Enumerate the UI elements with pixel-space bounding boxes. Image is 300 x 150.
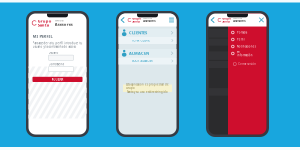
button[interactable]: Portada <box>228 29 266 36</box>
staticText: Santa <box>132 20 140 23</box>
staticText: CLIENTES <box>129 30 147 35</box>
staticText: Esta aplicación es propiedad de Grupo <box>126 83 169 90</box>
staticText: Cerrar sesión <box>238 62 256 66</box>
button[interactable]: Cerrar sesión <box>228 61 266 67</box>
staticText: STOCK ALMACEN <box>131 59 152 63</box>
staticText: FICHA CLIENTE <box>131 39 149 42</box>
button[interactable]: Close menu <box>258 14 264 25</box>
staticText: Asesores <box>143 19 155 23</box>
staticText: Santa <box>38 22 49 28</box>
button[interactable]: Back <box>120 14 126 25</box>
staticText: Mi información <box>237 50 253 57</box>
staticText: Portada <box>237 31 247 34</box>
staticText: Usuario <box>48 51 58 54</box>
button[interactable]: Mi información <box>228 50 266 57</box>
staticText: Asesores <box>55 22 73 27</box>
staticText: ACCEDER <box>51 78 63 81</box>
button[interactable]: ACCEDER <box>28 77 82 82</box>
button[interactable]: ALMACEN <box>118 49 176 57</box>
staticText: MI PERFIL <box>32 33 52 39</box>
staticText: Grupo <box>132 17 141 20</box>
staticText: ALMACEN <box>129 51 149 56</box>
button[interactable]: Back <box>210 14 216 25</box>
button[interactable]: Perfil <box>228 36 266 43</box>
button[interactable]: Notificaciones <box>228 43 266 50</box>
staticText: Contraseña <box>48 62 63 66</box>
button[interactable]: STOCK ALMACEN <box>118 57 176 64</box>
staticText: SERVICIOS <box>55 20 64 22</box>
button[interactable]: FICHA CLIENTE <box>118 37 176 44</box>
button[interactable]: CLIENTES <box>118 28 176 37</box>
staticText: Grupo <box>38 18 52 24</box>
staticText: SERVICIOS <box>233 17 242 19</box>
staticText: SERVICIOS <box>143 17 152 19</box>
staticText: Perfil <box>237 38 245 41</box>
staticText: Notificaciones <box>237 45 256 48</box>
staticText: Santa y su uso está restringido <box>127 90 168 94</box>
staticText: Santa <box>222 20 230 23</box>
staticText: Para acceder a tu perfil introduce tu us… <box>32 41 82 48</box>
button[interactable]: Menu <box>168 14 174 25</box>
staticText: Grupo <box>222 17 231 20</box>
staticText: Asesores <box>233 19 245 23</box>
